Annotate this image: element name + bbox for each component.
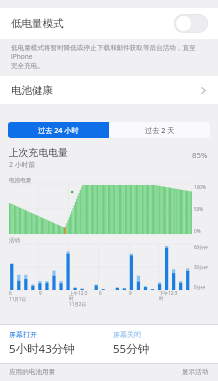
button[interactable]: 过去 2 天: [109, 122, 210, 138]
staticText: 0分钟: [194, 284, 206, 290]
staticText: 100%: [194, 184, 206, 190]
staticText: 电池健康: [11, 84, 53, 97]
staticText: 5小时43分钟: [9, 341, 75, 357]
button[interactable]: 屏幕打开: [9, 330, 113, 357]
staticText: 下午12:3 时: [159, 290, 178, 301]
staticText: 上午12:3 时: [69, 290, 88, 301]
staticText: 电池电量: [9, 177, 32, 184]
button[interactable]: 电池健康: [0, 76, 218, 104]
staticText: 9: [39, 290, 42, 296]
staticText: 活动: [9, 237, 21, 244]
button[interactable]: 屏幕关闭: [113, 330, 218, 357]
staticText: 60分钟: [194, 244, 208, 250]
staticText: 2 小时前: [9, 160, 36, 169]
staticText: 9: [129, 290, 132, 296]
staticText: 11月2日: [69, 301, 87, 307]
staticText: 过去 2 天: [145, 125, 175, 135]
button[interactable]: 显示活动: [182, 368, 209, 376]
staticText: 0%: [194, 228, 201, 234]
staticText: 屏幕关闭: [113, 330, 141, 339]
staticText: 11月1日: [9, 296, 27, 302]
button[interactable]: 过去 24 小时: [8, 122, 109, 138]
staticText: 过去 24 小时: [38, 125, 79, 135]
staticText: 6: [9, 290, 12, 296]
button[interactable]: 低电量模式: [0, 8, 218, 39]
staticText: 显示活动: [182, 368, 209, 376]
staticText: 屏幕打开: [9, 330, 37, 339]
staticText: 6: [99, 290, 102, 296]
staticText: 应用的电池用量: [9, 368, 56, 376]
button[interactable]: 低电量模式开关: [174, 14, 208, 33]
staticText: 低电量模式: [11, 17, 64, 30]
staticText: 30分钟: [194, 264, 208, 270]
other: 更多: [199, 84, 208, 97]
staticText: 50%: [194, 206, 204, 212]
staticText: 85%: [192, 150, 208, 161]
staticText: 上次充电电量: [9, 147, 68, 159]
staticText: 低电量模式将暂时降低或停止下载和邮件获取等后台活动，直至 iPhone 完全充电…: [11, 43, 206, 70]
staticText: 55分钟: [113, 341, 150, 357]
